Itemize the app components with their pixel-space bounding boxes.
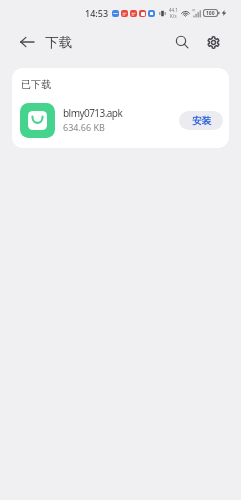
button[interactable]: Back: [7, 22, 47, 62]
staticText: 634.66 KB: [63, 121, 105, 133]
staticText: K/s: [170, 13, 177, 19]
staticText: 14:53: [85, 7, 109, 19]
button[interactable]: 安装: [179, 111, 223, 130]
button[interactable]: Settings: [197, 26, 229, 58]
staticText: 安装: [192, 115, 211, 127]
button[interactable]: blmy0713.apk: [12, 99, 229, 142]
staticText: 44.1: [169, 7, 178, 13]
staticText: 下载: [45, 34, 72, 51]
staticText: 已下载: [21, 78, 51, 91]
button[interactable]: Search: [168, 28, 197, 57]
staticText: blmy0713.apk: [63, 106, 123, 120]
staticText: 100: [206, 10, 215, 16]
